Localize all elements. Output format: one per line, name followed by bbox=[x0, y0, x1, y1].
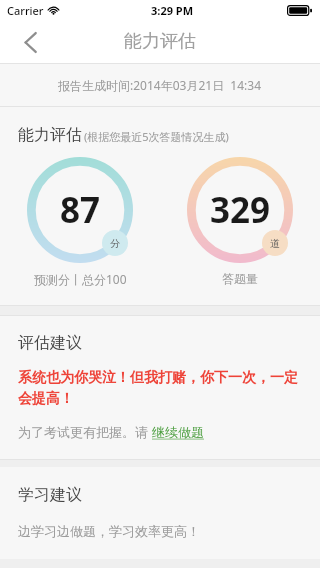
staticText: 3:29 PM bbox=[151, 3, 194, 18]
staticText: 为了考试更有把握。请 bbox=[18, 423, 152, 441]
staticText: 答题量 bbox=[222, 271, 258, 286]
staticText: 预测分丨总分100 bbox=[34, 271, 127, 287]
button[interactable]: Back bbox=[10, 22, 50, 62]
staticText: Carrier bbox=[7, 3, 44, 18]
button[interactable]: 继续做题 bbox=[152, 424, 204, 440]
staticText: 能力评估 bbox=[18, 125, 82, 145]
staticText: 分 bbox=[110, 237, 120, 250]
staticText: 学习建议 bbox=[18, 485, 82, 505]
staticText: 道 bbox=[270, 237, 280, 250]
staticText: 能力评估 bbox=[124, 30, 196, 53]
staticText: 继续做题 bbox=[152, 424, 204, 440]
staticText: 87 bbox=[60, 186, 101, 234]
staticText: 系统也为你哭泣！但我打赌，你下一次，一定会提高！ bbox=[18, 369, 304, 407]
staticText: 边学习边做题，学习效率更高！ bbox=[18, 523, 200, 539]
staticText: 329 bbox=[210, 186, 271, 234]
staticText: (根据您最近5次答题情况生成) bbox=[84, 129, 229, 144]
staticText: 评估建议 bbox=[18, 333, 82, 353]
staticText: 报告生成时间:2014年03月21日 14:34 bbox=[58, 77, 262, 93]
